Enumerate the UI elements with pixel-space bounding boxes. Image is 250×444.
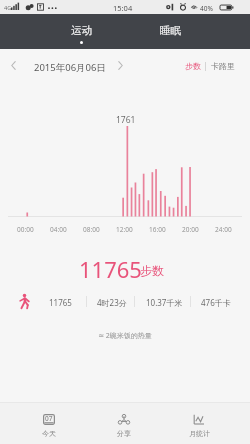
staticText: 08:00	[83, 225, 100, 234]
staticText: 分享	[117, 429, 131, 438]
staticText: 卡路里	[211, 61, 235, 71]
staticText: 20:00	[182, 225, 199, 234]
staticText: 12:00	[116, 225, 133, 234]
staticText: 24:00	[215, 225, 232, 234]
staticText: 今天	[42, 429, 56, 438]
staticText: 07	[45, 414, 53, 423]
staticText: 4G	[4, 4, 12, 11]
staticText: 40%	[200, 4, 213, 13]
button[interactable]: 卡路里	[207, 58, 239, 74]
staticText: ≈ 2碗米饭的热量	[0, 331, 250, 341]
staticText: 04:00	[50, 225, 67, 234]
staticText: 00:00	[17, 225, 34, 234]
staticText: 10.37千米	[146, 297, 183, 308]
staticText: 16:00	[149, 225, 166, 234]
staticText: 步数	[185, 61, 201, 71]
button[interactable]: 运动	[59, 16, 103, 47]
button[interactable]: 睡眠	[148, 16, 192, 47]
staticText: 4时23分	[97, 297, 127, 308]
button[interactable]: Previous day	[6, 57, 21, 73]
staticText: 步数	[140, 263, 164, 278]
staticText: 1761	[116, 114, 136, 126]
staticText: 睡眠	[160, 24, 181, 37]
staticText: 运动	[71, 24, 92, 37]
button[interactable]: 分享	[94, 405, 154, 444]
button[interactable]: 步数	[181, 58, 205, 74]
staticText: 15:04	[113, 3, 133, 13]
button[interactable]: 07	[19, 405, 79, 444]
staticText: 11765	[49, 297, 72, 308]
staticText: 11765	[79, 254, 142, 284]
staticText: 476千卡	[201, 297, 231, 308]
staticText: 2015年06月06日	[34, 61, 106, 74]
button[interactable]: Next day	[113, 57, 128, 73]
staticText: 月统计	[189, 429, 210, 438]
button[interactable]: 月统计	[169, 405, 229, 444]
